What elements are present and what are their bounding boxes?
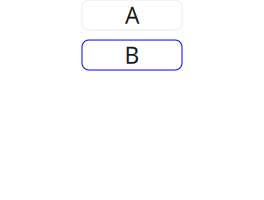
staticText: A — [125, 0, 139, 30]
staticText: B — [124, 40, 139, 70]
